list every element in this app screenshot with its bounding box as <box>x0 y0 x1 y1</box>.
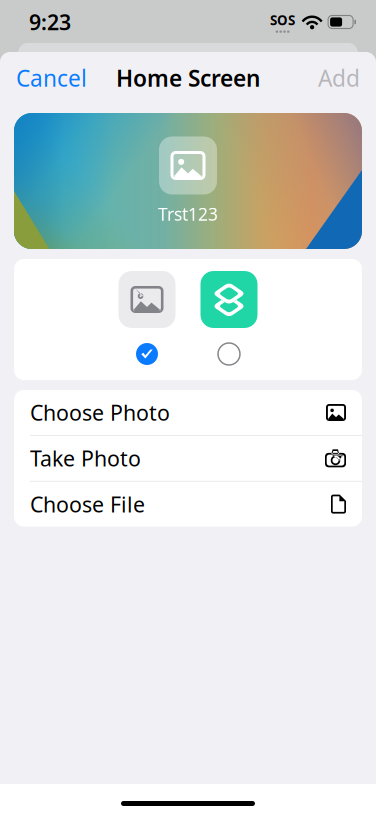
staticText: Take Photo <box>30 444 141 472</box>
button[interactable]: Default photo icon, selected <box>118 271 175 365</box>
staticText: Cancel <box>16 63 87 93</box>
staticText: 9:23 <box>29 8 71 36</box>
button[interactable]: Choose Photo <box>14 390 362 435</box>
button[interactable]: Add <box>302 52 376 104</box>
button[interactable]: Choose File <box>14 482 362 527</box>
staticText: Choose File <box>30 490 145 518</box>
staticText: SOS <box>270 11 295 29</box>
button[interactable]: Take Photo <box>14 436 362 481</box>
button[interactable]: Cancel <box>0 52 103 104</box>
staticText: Add <box>318 63 360 93</box>
staticText: Home Screen <box>116 63 260 93</box>
staticText: Choose Photo <box>30 398 170 427</box>
button[interactable]: Layers app icon <box>200 271 257 365</box>
staticText: Trst123 <box>158 202 218 225</box>
